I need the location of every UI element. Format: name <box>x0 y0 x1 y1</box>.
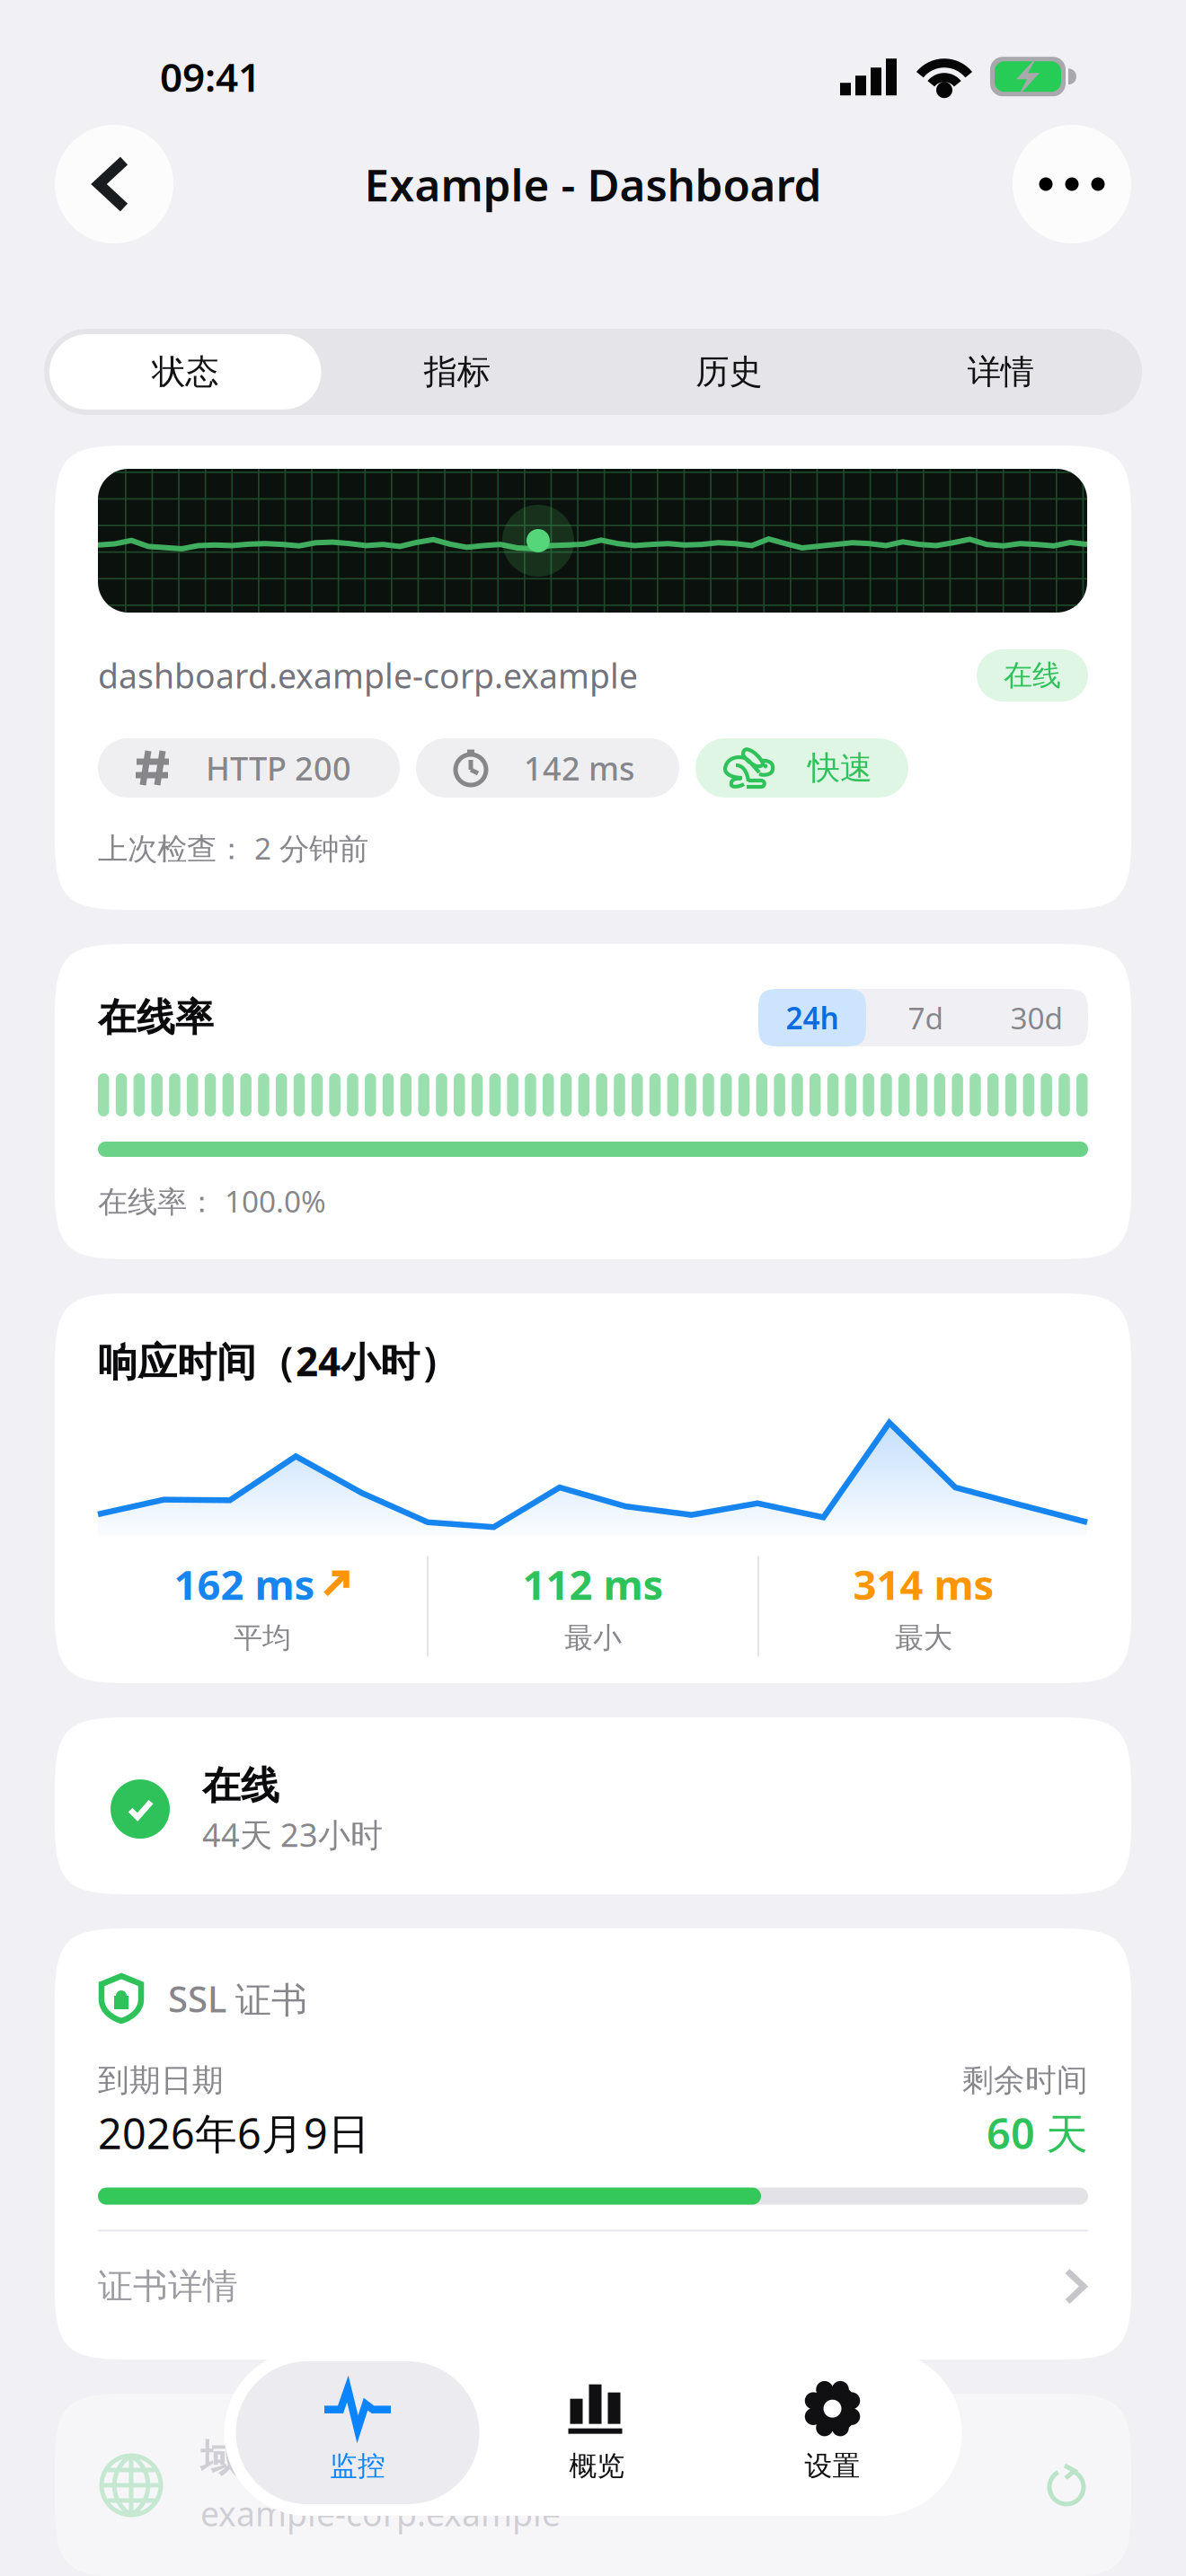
staticText: 7d <box>908 998 944 1038</box>
staticText: 60 天 <box>987 2105 1088 2161</box>
staticText: 概览 <box>569 2449 625 2483</box>
staticText: 响应时间（24小时） <box>98 1335 459 1387</box>
staticText: 314 ms <box>853 1557 994 1611</box>
staticText: 平均 <box>234 1620 291 1656</box>
staticText: 域名 <box>200 2435 278 2482</box>
staticText: 上次检查： 2 分钟前 <box>98 828 368 868</box>
staticText: 到期日期 <box>98 2061 224 2100</box>
staticText: 112 ms <box>522 1557 664 1611</box>
button[interactable]: 24h <box>758 989 866 1046</box>
staticText: HTTP 200 <box>206 746 351 789</box>
button[interactable]: 概览 <box>479 2361 715 2504</box>
staticText: 09:41 <box>160 50 261 103</box>
button[interactable]: 历史 <box>593 334 865 410</box>
staticText: 在线率： 100.0% <box>98 1181 326 1221</box>
staticText: SSL 证书 <box>168 1974 307 2022</box>
button[interactable]: 设置 <box>715 2361 950 2504</box>
staticText: example-corp.example <box>200 2491 561 2536</box>
staticText: 指标 <box>424 351 490 393</box>
staticText: 状态 <box>152 351 219 393</box>
button[interactable]: 监控 <box>236 2361 479 2504</box>
button[interactable]: More options <box>1013 125 1131 243</box>
button[interactable]: 详情 <box>865 334 1137 410</box>
staticText: 24h <box>786 998 839 1038</box>
staticText: 快速 <box>808 748 872 788</box>
button[interactable]: 状态 <box>49 334 321 410</box>
button[interactable]: 指标 <box>321 334 593 410</box>
staticText: 在线率 <box>98 994 214 1041</box>
staticText: 历史 <box>696 351 762 393</box>
button[interactable]: 7d <box>866 989 986 1046</box>
staticText: 142 ms <box>524 746 634 789</box>
staticText: 设置 <box>805 2449 860 2483</box>
staticText: dashboard.example-corp.example <box>98 653 638 698</box>
staticText: 证书详情 <box>98 2265 238 2308</box>
staticText: 在线 <box>1004 658 1061 693</box>
staticText: 30d <box>1010 998 1063 1038</box>
button[interactable]: 证书详情 <box>98 2232 1088 2307</box>
staticText: 最小 <box>564 1620 622 1656</box>
staticText: 2026年6月9日 <box>98 2105 370 2161</box>
staticText: 44天 23小时 <box>202 1813 383 1856</box>
staticText: 在线 <box>202 1762 279 1809</box>
staticText: 监控 <box>330 2449 385 2483</box>
staticText: 详情 <box>967 351 1034 393</box>
staticText: Example - Dashboard <box>364 155 822 213</box>
staticText: 剩余时间 <box>962 2061 1088 2100</box>
staticText: 162 ms <box>174 1557 315 1611</box>
button[interactable]: 30d <box>986 989 1088 1046</box>
button[interactable]: Back <box>55 125 173 243</box>
staticText: 最大 <box>895 1620 952 1656</box>
